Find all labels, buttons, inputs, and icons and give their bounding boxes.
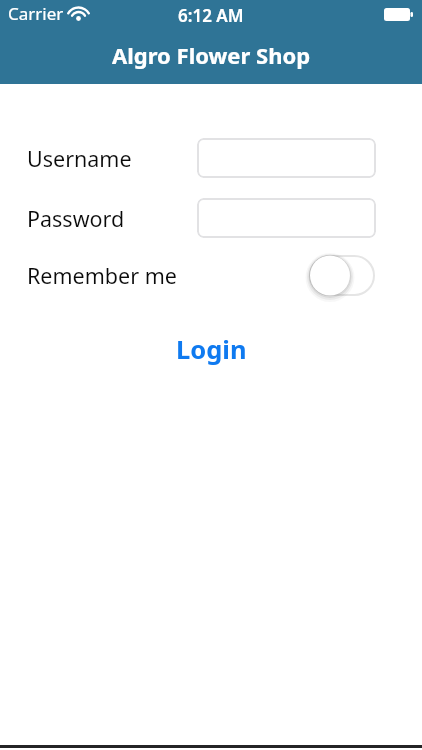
staticText: Remember me [27,261,177,290]
staticText: Password [27,204,125,233]
staticText: 6:12 AM [178,4,244,27]
button[interactable] [197,138,376,178]
staticText: Carrier [8,2,64,25]
staticText: Algro Flower Shop [112,40,311,70]
button[interactable] [197,198,376,238]
button[interactable]: Login [0,329,422,369]
staticText: Username [27,144,132,173]
button[interactable] [309,255,375,296]
staticText: Login [176,332,247,367]
